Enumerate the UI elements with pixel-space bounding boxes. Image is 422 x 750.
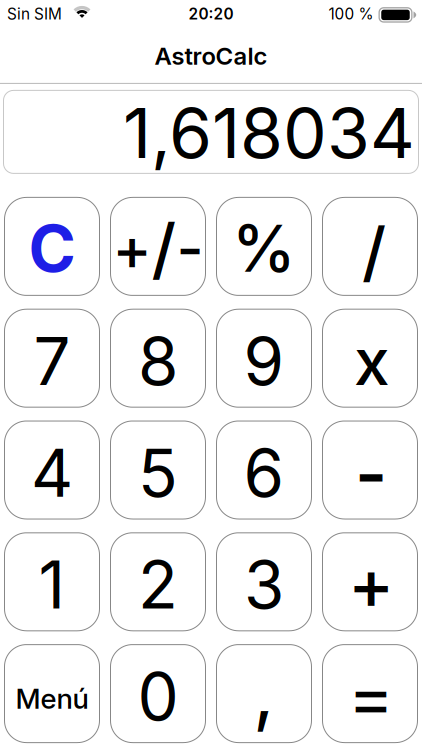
staticText: 4 xyxy=(31,433,73,512)
button[interactable]: + xyxy=(322,532,418,631)
button[interactable]: 2 xyxy=(110,532,206,631)
staticText: C xyxy=(28,210,75,287)
staticText: 7 xyxy=(33,322,70,401)
button[interactable]: 0 xyxy=(110,644,206,743)
button[interactable]: 9 xyxy=(216,309,312,408)
button[interactable]: % xyxy=(216,197,312,296)
staticText: Menú xyxy=(15,682,88,716)
staticText: - xyxy=(176,213,203,284)
button[interactable]: 5 xyxy=(110,420,206,519)
staticText: 20:20 xyxy=(188,5,233,23)
button[interactable]: 8 xyxy=(110,309,206,408)
button[interactable]: = xyxy=(322,644,418,743)
staticText: x xyxy=(354,323,390,400)
button[interactable]: , xyxy=(216,644,312,743)
staticText: 3 xyxy=(244,545,284,624)
staticText: 6 xyxy=(243,433,284,512)
staticText: 5 xyxy=(138,433,178,512)
staticText: 8 xyxy=(138,322,178,401)
staticText: % xyxy=(232,210,296,287)
button[interactable]: C xyxy=(4,197,100,296)
button[interactable]: 3 xyxy=(216,532,312,631)
staticText: 100 % xyxy=(328,5,373,23)
staticText: + xyxy=(348,542,394,626)
staticText: - xyxy=(355,432,387,516)
staticText: 1 xyxy=(38,545,65,624)
staticText: 2 xyxy=(138,545,178,624)
staticText: 1,618034 xyxy=(123,91,415,175)
button[interactable]: 1 xyxy=(4,532,100,631)
staticText: , xyxy=(253,646,275,737)
staticText: 9 xyxy=(243,322,284,401)
staticText: Sin SIM xyxy=(7,5,62,23)
staticText: 0 xyxy=(137,657,178,736)
button[interactable]: x xyxy=(322,309,418,408)
staticText: = xyxy=(348,655,394,739)
button[interactable]: 6 xyxy=(216,420,312,519)
staticText: AstroCalc xyxy=(154,41,267,70)
button[interactable]: + xyxy=(110,197,206,296)
button[interactable]: 7 xyxy=(4,309,100,408)
button[interactable]: 4 xyxy=(4,420,100,519)
button[interactable]: - xyxy=(322,420,418,519)
staticText: + xyxy=(112,213,151,284)
staticText: / xyxy=(151,208,176,289)
button[interactable]: / xyxy=(322,197,418,296)
button[interactable]: Menú xyxy=(4,644,100,743)
staticText: / xyxy=(362,212,386,291)
